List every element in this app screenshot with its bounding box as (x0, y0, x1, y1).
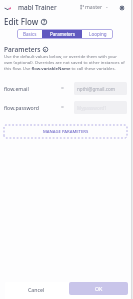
staticText: ? (44, 47, 47, 52)
staticText: Edit Flow (4, 16, 39, 27)
button[interactable]: Help (41, 19, 47, 25)
staticText: Use the default values below, or overrid… (4, 53, 125, 71)
button[interactable]: Settings (118, 4, 126, 12)
staticText: Parameters (50, 31, 75, 37)
button[interactable]: npthi@gmail.com (74, 82, 127, 95)
staticText: Looping (89, 31, 107, 37)
staticText: - (106, 3, 108, 10)
staticText: = (61, 104, 64, 111)
staticText: flow.email (4, 85, 29, 92)
button[interactable]: OK (69, 282, 128, 295)
button[interactable]: Parameters (42, 29, 82, 39)
button[interactable]: Looping (82, 29, 113, 39)
button[interactable]: Cancel (22, 283, 50, 296)
staticText: Cancel (28, 286, 45, 293)
staticText: = (61, 85, 64, 92)
staticText: flow.password (4, 104, 39, 111)
button[interactable]: MANAGE PARAMETERS (4, 125, 127, 138)
button[interactable]: Basics (17, 29, 42, 39)
staticText: OK (95, 285, 103, 292)
button[interactable]: Mypassword1 (74, 101, 127, 114)
staticText: npthi@gmail.com (77, 86, 116, 92)
staticText: master (85, 3, 103, 10)
staticText: ? (43, 19, 46, 25)
staticText: MANAGE PARAMETERS (43, 129, 89, 135)
button[interactable]: Help (43, 47, 48, 52)
staticText: Parameters (4, 45, 41, 54)
staticText: Basics (23, 31, 37, 37)
staticText: mabl Trainer (18, 3, 57, 12)
staticText: Mypassword1 (77, 105, 107, 111)
